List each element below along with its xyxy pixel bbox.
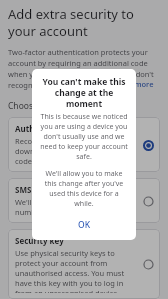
staticText: We'll allow you to make this change afte… xyxy=(40,169,128,209)
staticText: SMS code xyxy=(15,184,53,195)
staticText: Recommended. You'll need to download an … xyxy=(15,136,136,166)
staticText: This is because we noticed you are using… xyxy=(40,112,128,162)
button[interactable]: Security key xyxy=(8,229,160,299)
staticText: Security key xyxy=(15,235,64,246)
staticText: Add extra security to your account xyxy=(8,5,160,40)
button[interactable]: Learn more xyxy=(112,79,154,89)
staticText: OK xyxy=(78,219,91,231)
button[interactable]: Authenticator app xyxy=(8,117,160,172)
staticText: We'll send a code to the mobile number t… xyxy=(15,197,136,217)
staticText: Use physical security keys to protect yo… xyxy=(15,248,136,293)
button[interactable]: SMS code xyxy=(8,178,160,223)
staticText: Authenticator app xyxy=(15,123,89,134)
staticText: Two-factor authentication protects your … xyxy=(8,47,160,90)
button[interactable]: OK xyxy=(64,217,105,233)
staticText: You can't make this change at the moment xyxy=(40,76,128,109)
staticText: Choose a security method xyxy=(8,100,112,112)
